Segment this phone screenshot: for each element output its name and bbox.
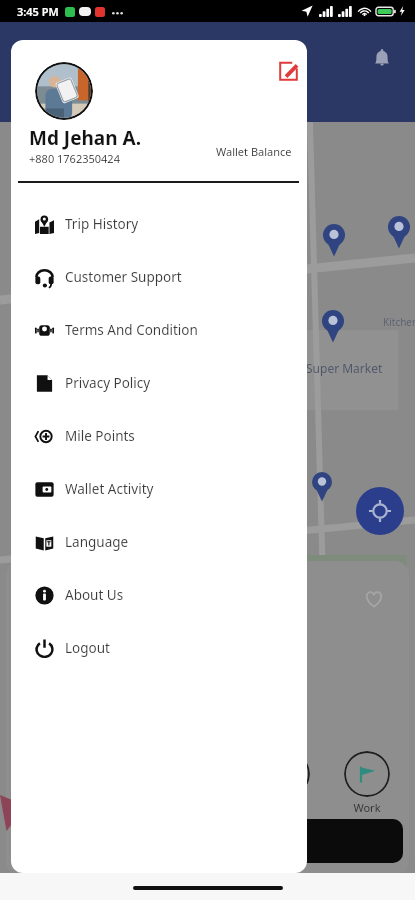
staticText: Customer Support xyxy=(65,268,182,286)
button[interactable]: Trip History xyxy=(11,197,307,250)
button[interactable] xyxy=(35,62,93,120)
button[interactable]: Edit profile xyxy=(273,56,303,86)
staticText: Language xyxy=(65,533,129,551)
staticText: Mile Points xyxy=(65,427,135,445)
button[interactable]: Notifications xyxy=(365,42,399,76)
button[interactable]: Terms And Condition xyxy=(11,303,307,356)
button[interactable]: Wallet Activity xyxy=(11,462,307,515)
button[interactable]: BOOK NOW xyxy=(26,819,403,863)
staticText: About Us xyxy=(65,586,124,604)
button[interactable]: My location xyxy=(356,487,404,535)
staticText: Wallet Balance xyxy=(216,144,292,159)
button[interactable]: Customer Support xyxy=(11,250,307,303)
staticText: Kitchen xyxy=(383,315,415,329)
staticText: Privacy Policy xyxy=(65,374,151,392)
button[interactable]: Mile Points xyxy=(11,409,307,462)
button[interactable]: CNG xyxy=(258,751,316,815)
button[interactable]: Wallet Balance xyxy=(216,144,292,159)
staticText: +880 1762350424 xyxy=(29,151,120,166)
staticText: Wallet Activity xyxy=(65,480,154,498)
staticText: Super Market xyxy=(306,360,383,376)
staticText: Md Jehan A. xyxy=(29,125,142,151)
staticText: Work xyxy=(353,800,381,815)
button[interactable]: Logout xyxy=(11,621,307,674)
staticText: Trip History xyxy=(65,215,139,233)
button[interactable]: Language xyxy=(11,515,307,568)
button[interactable]: Privacy Policy xyxy=(11,356,307,409)
button[interactable]: Work xyxy=(338,751,396,815)
staticText: Logout xyxy=(65,639,110,657)
staticText: Terms And Condition xyxy=(65,321,198,339)
button[interactable]: About Us xyxy=(11,568,307,621)
staticText: 3:45 PM xyxy=(17,4,59,19)
